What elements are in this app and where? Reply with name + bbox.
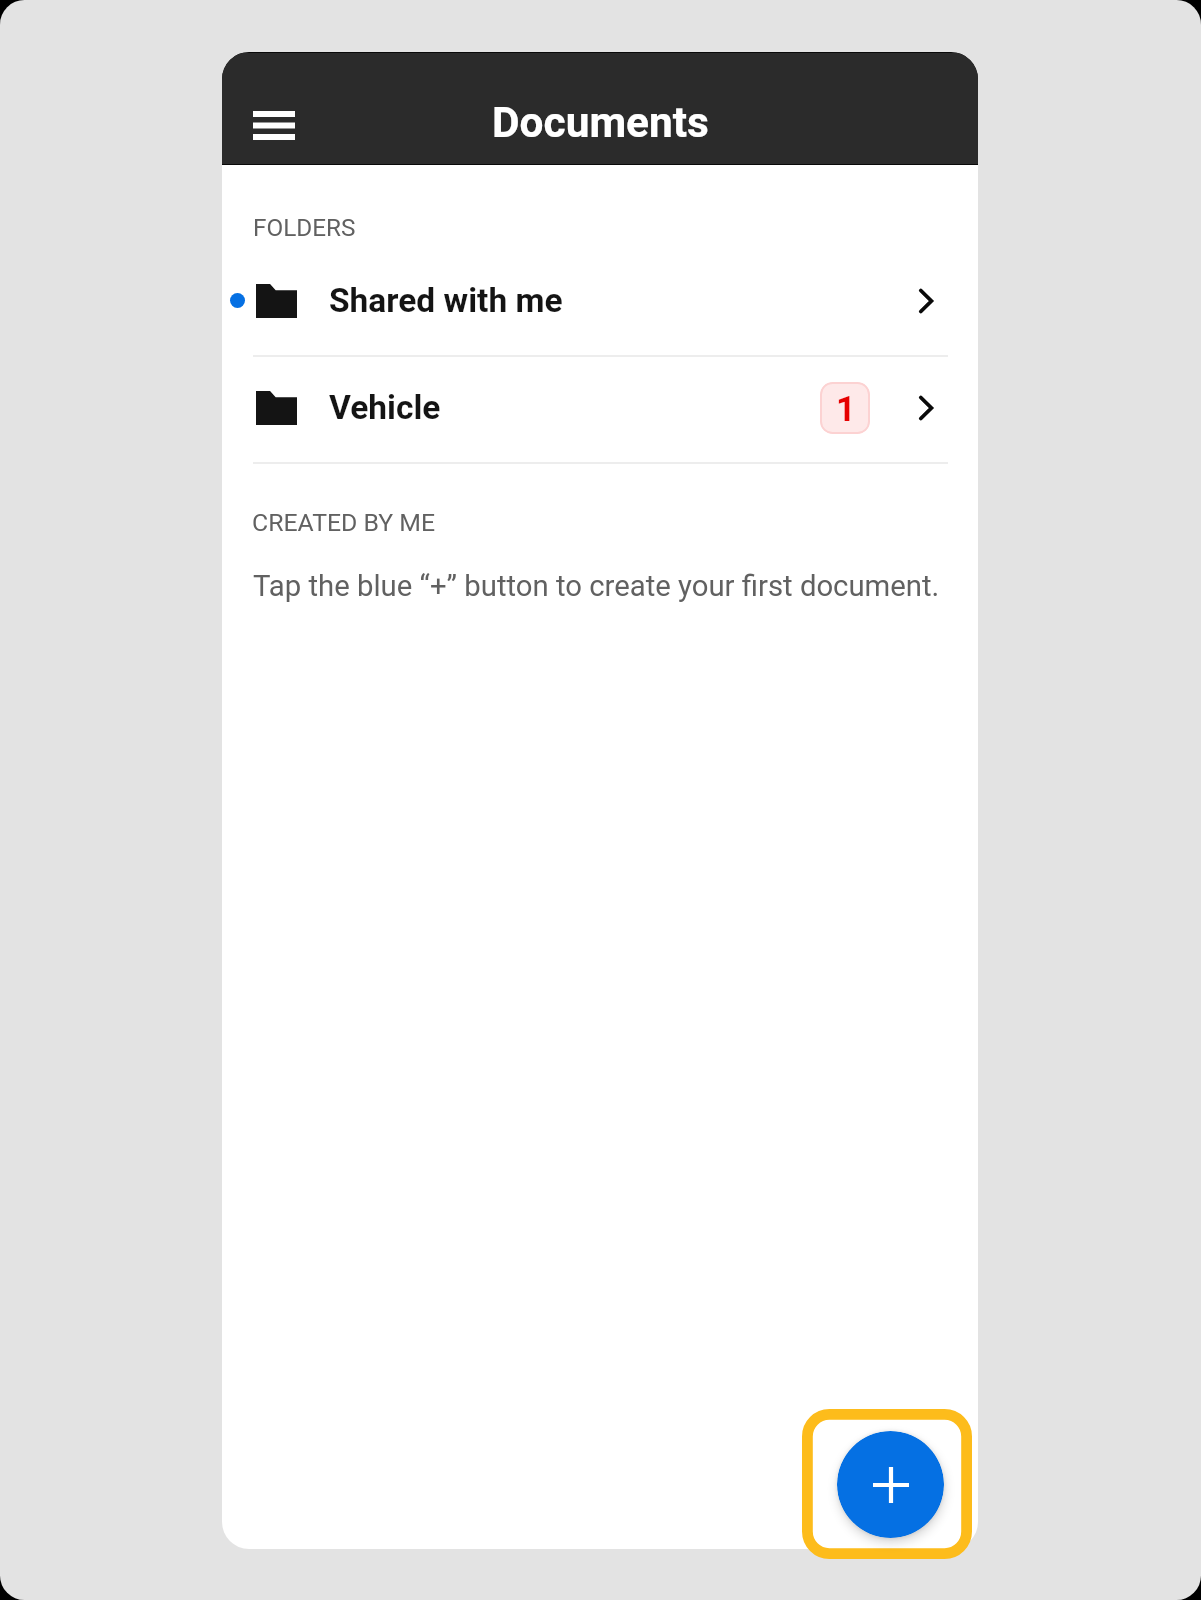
staticText: Shared with me <box>329 281 563 320</box>
staticText: CREATED BY ME <box>252 508 436 537</box>
staticText: Documents <box>492 98 709 148</box>
button[interactable]: Open navigation menu <box>242 99 306 152</box>
button[interactable]: Shared with me <box>222 247 978 354</box>
staticText: FOLDERS <box>253 213 356 241</box>
staticText: Tap the blue “+” button to create your f… <box>253 569 940 603</box>
button[interactable]: Create new document <box>837 1431 944 1538</box>
button[interactable]: Vehicle <box>222 354 978 461</box>
staticText: 1 <box>836 389 856 429</box>
staticText: Vehicle <box>329 388 441 427</box>
